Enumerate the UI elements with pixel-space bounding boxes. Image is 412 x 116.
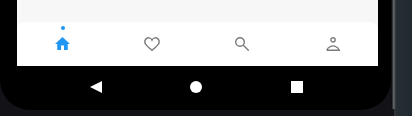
button[interactable]: Home xyxy=(190,81,202,93)
button[interactable]: Search xyxy=(198,22,288,66)
button[interactable]: Back xyxy=(90,81,102,93)
button[interactable]: Profile xyxy=(288,22,378,66)
button[interactable]: Favorites xyxy=(108,22,198,66)
button[interactable]: Home xyxy=(17,22,108,66)
